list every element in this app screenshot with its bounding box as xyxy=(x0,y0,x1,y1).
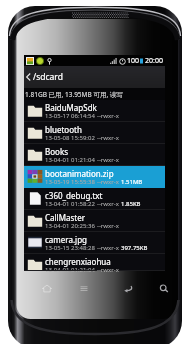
button[interactable]: /sdcard xyxy=(24,66,165,88)
button[interactable]: Back xyxy=(113,276,143,300)
staticText: 13-05-15 23:48:28 xyxy=(45,244,95,252)
button[interactable]: Search xyxy=(149,276,179,300)
staticText: 13-05-08 15:59:02 xyxy=(45,134,95,142)
staticText: 397.75KB xyxy=(121,244,148,252)
button[interactable]: camera.jpg xyxy=(24,232,165,254)
staticText: Books xyxy=(45,146,120,157)
staticText: --rwxr-x xyxy=(97,200,119,208)
button[interactable]: bluetooth xyxy=(24,122,165,144)
button[interactable]: c360_debug.txt xyxy=(24,188,165,210)
staticText: CallMaster xyxy=(45,212,120,223)
button[interactable]: BaiduMapSdk xyxy=(24,100,165,122)
staticText: 13-05-19 15:55:38 xyxy=(45,178,95,186)
button[interactable]: CallMaster xyxy=(24,210,165,232)
staticText: bootanimation.zip xyxy=(45,168,120,179)
staticText: bluetooth xyxy=(45,124,120,135)
staticText: 13-04-01 01:58:22 xyxy=(45,200,95,208)
staticText: --rwxr-x xyxy=(97,178,119,186)
staticText: --rwxr-x xyxy=(97,266,119,274)
staticText: 13-04-01 01:21:04 xyxy=(45,156,95,164)
button[interactable]: chengrenxiaohua xyxy=(24,254,165,271)
button[interactable]: Menu xyxy=(69,276,99,300)
staticText: 13-04-01 01:21:04 xyxy=(45,266,95,274)
button[interactable]: Books xyxy=(24,144,165,166)
staticText: 1.85KB xyxy=(121,200,141,208)
staticText: --rwxr-x xyxy=(97,134,119,142)
staticText: 13-05-17 06:14:54 xyxy=(45,112,95,120)
staticText: 100 xyxy=(127,56,140,66)
button[interactable]: bootanimation.zip xyxy=(24,166,165,188)
staticText: --rwxr-x xyxy=(97,222,119,230)
staticText: camera.jpg xyxy=(45,234,120,245)
button[interactable]: Home xyxy=(32,276,62,300)
staticText: 1.81GB 已用, 13.95MB 可用, 读写 xyxy=(25,90,123,99)
staticText: BaiduMapSdk xyxy=(45,102,120,113)
staticText: --rwxr-x xyxy=(97,156,119,164)
staticText: --rwxr-x xyxy=(97,112,119,120)
staticText: chengrenxiaohua xyxy=(45,256,120,267)
staticText: --rwxr-x xyxy=(97,244,119,252)
staticText: 1.51MB xyxy=(121,178,143,186)
staticText: 20:00 xyxy=(145,56,163,66)
staticText: /sdcard xyxy=(33,71,63,83)
staticText: c360_debug.txt xyxy=(45,190,120,201)
staticText: 13-04-01 20:25:36 xyxy=(45,222,95,230)
